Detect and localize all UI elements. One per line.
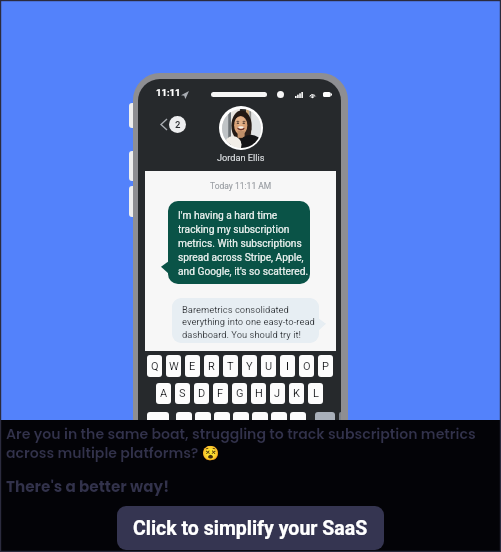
staticText: Are you in the same boat, struggling to … bbox=[6, 424, 495, 463]
staticText: Baremetrics consolidated everything into… bbox=[182, 304, 315, 340]
button[interactable]: O bbox=[299, 355, 314, 377]
button[interactable]: Y bbox=[242, 355, 257, 377]
button[interactable] bbox=[290, 412, 306, 420]
button[interactable]: A bbox=[156, 383, 171, 404]
button[interactable] bbox=[195, 412, 211, 420]
button[interactable] bbox=[252, 412, 268, 420]
button[interactable]: R bbox=[204, 355, 219, 377]
button[interactable]: 2 bbox=[169, 116, 186, 133]
button[interactable] bbox=[147, 412, 169, 420]
button[interactable]: G bbox=[232, 383, 247, 404]
button[interactable] bbox=[233, 412, 249, 420]
staticText: E bbox=[189, 360, 196, 373]
button[interactable]: Click to simplify your SaaS bbox=[117, 506, 384, 550]
button[interactable]: L bbox=[308, 383, 323, 404]
staticText: J bbox=[274, 387, 281, 400]
staticText: S bbox=[179, 387, 186, 400]
staticText: P bbox=[322, 360, 329, 373]
button[interactable] bbox=[214, 412, 230, 420]
button[interactable]: T bbox=[223, 355, 238, 377]
button[interactable]: S bbox=[175, 383, 190, 404]
staticText: H bbox=[255, 387, 263, 400]
staticText: G bbox=[236, 387, 244, 400]
staticText: There's a better way! bbox=[6, 476, 170, 497]
staticText: Y bbox=[246, 360, 253, 373]
staticText: A bbox=[160, 387, 168, 400]
button[interactable]: H bbox=[251, 383, 266, 404]
staticText: K bbox=[293, 387, 300, 400]
button[interactable]: J bbox=[270, 383, 285, 404]
staticText: Jordan Ellis bbox=[217, 152, 265, 163]
staticText: T bbox=[227, 360, 234, 373]
staticText: I'm having a hard time tracking my subsc… bbox=[178, 210, 309, 277]
staticText: D bbox=[198, 387, 206, 400]
staticText: F bbox=[217, 387, 224, 400]
staticText: Today 11:11 AM bbox=[210, 181, 272, 191]
button[interactable]: Back bbox=[161, 119, 167, 130]
staticText: Q bbox=[151, 360, 159, 373]
button[interactable]: D bbox=[194, 383, 209, 404]
staticText: R bbox=[208, 360, 215, 373]
button[interactable] bbox=[315, 412, 335, 420]
button[interactable]: F bbox=[213, 383, 228, 404]
staticText: I bbox=[286, 360, 289, 373]
button[interactable] bbox=[271, 412, 287, 420]
button[interactable]: W bbox=[166, 355, 181, 377]
button[interactable]: Q bbox=[147, 355, 162, 377]
button[interactable]: P bbox=[318, 355, 333, 377]
staticText: 2 bbox=[175, 119, 181, 130]
staticText: W bbox=[169, 360, 179, 373]
staticText: U bbox=[265, 360, 273, 373]
button[interactable]: U bbox=[261, 355, 276, 377]
staticText: Click to simplify your SaaS bbox=[133, 517, 368, 540]
button[interactable]: I bbox=[280, 355, 295, 377]
staticText: L bbox=[313, 387, 319, 400]
staticText: 11:11 bbox=[156, 87, 181, 98]
staticText: O bbox=[303, 360, 311, 373]
button[interactable]: E bbox=[185, 355, 200, 377]
button[interactable]: K bbox=[289, 383, 304, 404]
button[interactable] bbox=[176, 412, 192, 420]
